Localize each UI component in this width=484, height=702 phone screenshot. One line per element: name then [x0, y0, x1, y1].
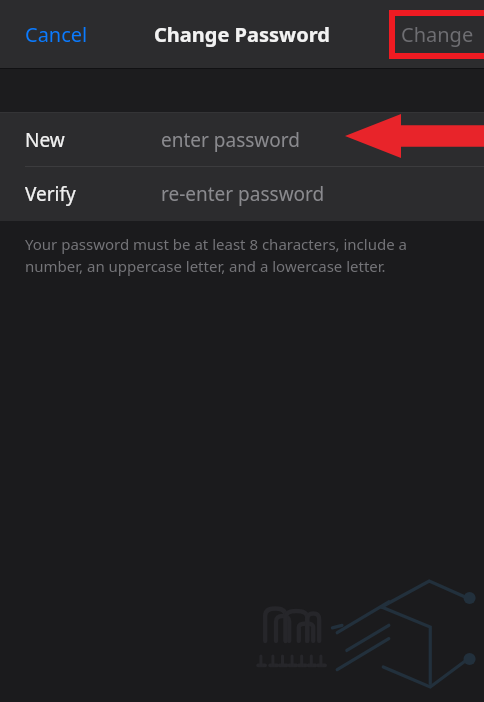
staticText: Cancel [25, 21, 88, 48]
staticText: Change [401, 21, 474, 48]
staticText: Your password must be at least 8 charact… [25, 234, 434, 277]
button[interactable]: Verify [0, 167, 484, 221]
button[interactable]: New [0, 113, 484, 166]
staticText: New [25, 127, 65, 153]
button[interactable]: Change [391, 7, 484, 62]
button[interactable]: Cancel [0, 7, 113, 62]
staticText: enter password [161, 127, 300, 153]
staticText: Verify [25, 181, 76, 207]
staticText: re-enter password [161, 181, 325, 207]
staticText: Change Password [154, 21, 330, 48]
